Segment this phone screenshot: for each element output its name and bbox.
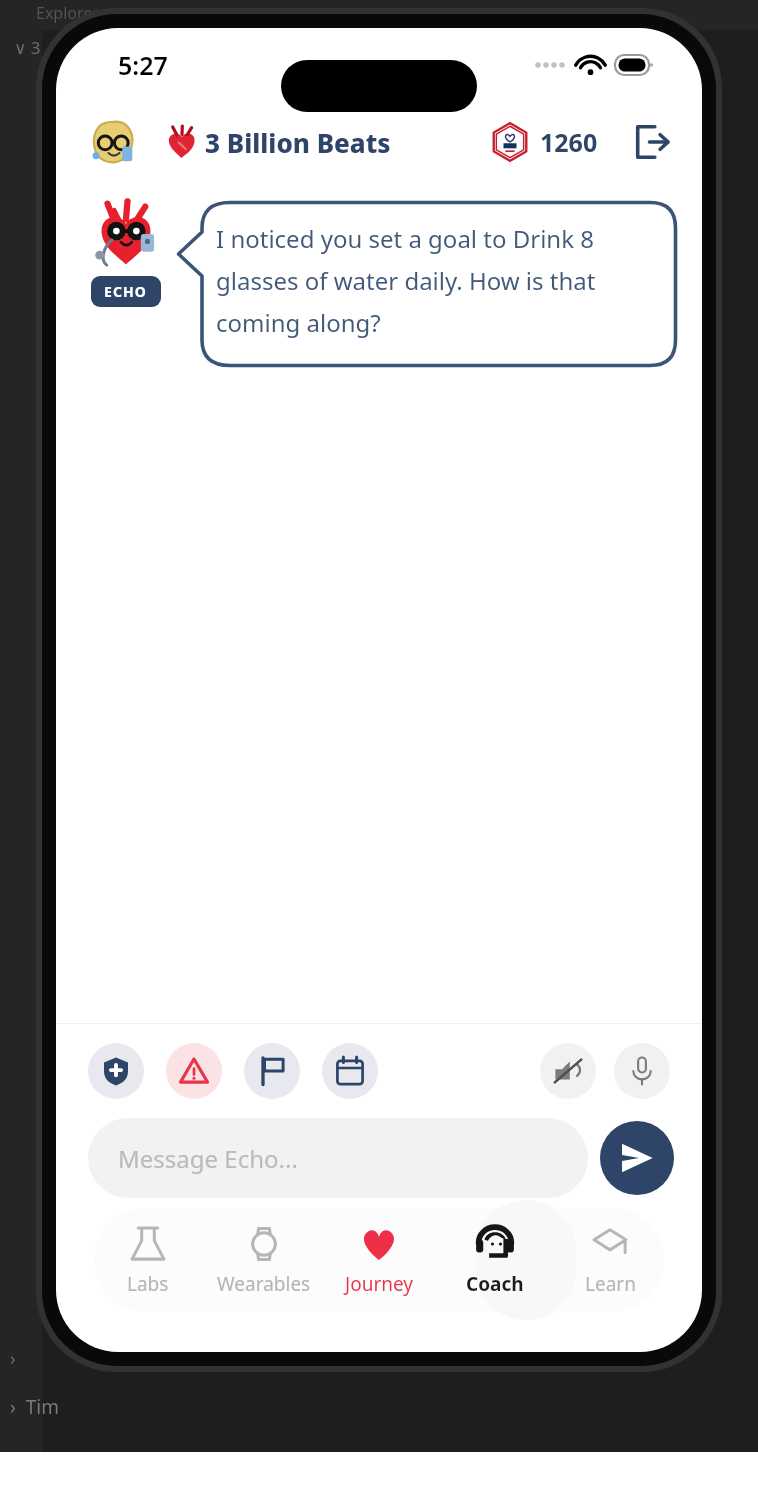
staticText: Wearables [217, 1271, 311, 1297]
button[interactable]: Journey [329, 1223, 429, 1297]
staticText: ECHO [104, 282, 148, 301]
staticText: Learn [585, 1271, 636, 1297]
button[interactable]: Wearables [214, 1223, 314, 1297]
button[interactable]: Mute [540, 1043, 596, 1099]
button[interactable]: Coach [445, 1223, 545, 1297]
staticText: Coach [466, 1271, 524, 1297]
button[interactable]: Log out [628, 119, 674, 165]
button[interactable]: Message Echo... [88, 1118, 588, 1198]
staticText: ∨ 3 [14, 36, 41, 59]
staticText: lic [666, 26, 686, 53]
button[interactable]: Send [600, 1121, 674, 1195]
button[interactable]: Flag [244, 1043, 300, 1099]
staticText: 5:27 [118, 48, 168, 82]
button[interactable]: Microphone [614, 1043, 670, 1099]
button[interactable]: Learn [560, 1223, 660, 1297]
button[interactable]: Safety [88, 1043, 144, 1099]
button[interactable]: Calendar [322, 1043, 378, 1099]
staticText: › [10, 1346, 16, 1371]
button[interactable]: Alert [166, 1043, 222, 1099]
button[interactable]: Labs [98, 1223, 198, 1297]
staticText: Message Echo... [118, 1142, 298, 1175]
staticText: Journey [345, 1271, 414, 1297]
button[interactable]: Profile [88, 117, 138, 167]
staticText: Explorer [36, 2, 99, 24]
staticText: I noticed you set a goal to Drink 8 glas… [216, 222, 656, 339]
button[interactable]: 1260 [481, 114, 616, 170]
staticText: 1260 [540, 125, 598, 159]
staticText: 3 Billion Beats [205, 125, 391, 160]
staticText: › Tim [10, 1394, 60, 1420]
staticText: Labs [127, 1271, 169, 1297]
